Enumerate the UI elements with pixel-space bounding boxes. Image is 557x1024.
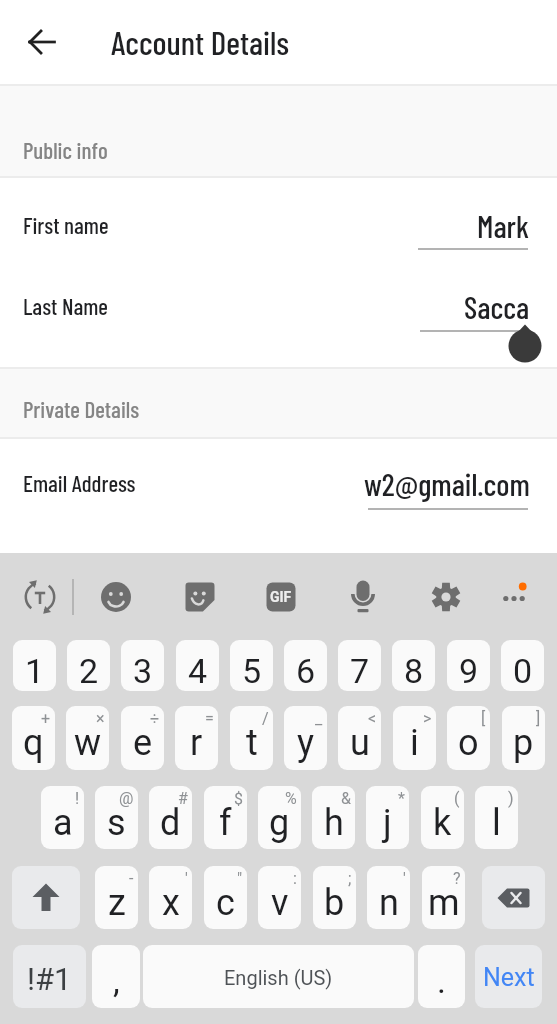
button[interactable]: l (475, 786, 518, 849)
button[interactable]: First name (0, 201, 557, 249)
staticText: > (423, 709, 432, 728)
staticText: Mark (477, 207, 530, 244)
staticText: Private Details (23, 395, 140, 423)
staticText: Last Name (23, 292, 108, 320)
button[interactable]: m (422, 866, 465, 929)
staticText: b (324, 882, 345, 924)
staticText: Next (483, 963, 535, 992)
staticText: 6 (296, 651, 316, 691)
button[interactable]: v (258, 866, 301, 929)
staticText: ' (185, 869, 188, 888)
staticText: 9 (459, 651, 479, 691)
staticText: u (350, 722, 370, 764)
button[interactable]: , (92, 945, 140, 1008)
button[interactable]: Email Address (0, 459, 557, 507)
staticText: ÷ (150, 709, 160, 728)
staticText: s (107, 802, 126, 844)
button[interactable]: 7 (338, 640, 381, 691)
staticText: r (190, 722, 203, 764)
staticText: < (368, 709, 377, 728)
button[interactable]: s (95, 786, 138, 849)
staticText: Sacca (464, 288, 530, 325)
staticText: , (113, 961, 120, 1001)
button[interactable]: Backspace (482, 866, 545, 929)
staticText: o (458, 722, 479, 764)
button[interactable]: c (204, 866, 247, 929)
staticText: First name (23, 211, 109, 239)
button[interactable]: 5 (230, 640, 273, 691)
button[interactable]: Next (475, 945, 542, 1008)
button[interactable]: n (367, 866, 410, 929)
staticText: GIF (270, 589, 292, 605)
button[interactable]: y (284, 706, 327, 770)
button[interactable]: t (230, 706, 273, 770)
staticText: × (96, 709, 105, 728)
button[interactable]: u (338, 706, 381, 770)
button[interactable]: f (204, 786, 247, 849)
button[interactable]: Emoji (92, 573, 140, 621)
staticText: . (437, 961, 446, 1001)
staticText: g (269, 802, 290, 844)
button[interactable]: 0 (501, 640, 544, 691)
staticText: 1 (25, 651, 45, 691)
button[interactable]: w (66, 706, 109, 770)
staticText: [ (481, 709, 486, 728)
button[interactable]: g (258, 786, 301, 849)
button[interactable]: k (421, 786, 464, 849)
button[interactable]: 6 (284, 640, 327, 691)
button[interactable]: GIF (257, 573, 305, 621)
staticText: d (160, 802, 181, 844)
button[interactable]: More options (490, 573, 538, 621)
staticText: Public info (23, 136, 108, 164)
button[interactable]: b (313, 866, 356, 929)
button[interactable]: !#1 (13, 945, 86, 1008)
staticText: ( (454, 789, 460, 808)
staticText: 8 (404, 651, 424, 691)
staticText: ! (75, 789, 80, 808)
button[interactable]: Shift (12, 866, 80, 929)
staticText: 7 (350, 651, 370, 691)
staticText: l (492, 802, 501, 844)
button[interactable]: Settings (422, 573, 470, 621)
button[interactable]: q (12, 706, 55, 770)
button[interactable]: a (41, 786, 84, 849)
button[interactable]: x (149, 866, 192, 929)
staticText: Account Details (111, 22, 290, 62)
staticText: ? (453, 869, 461, 888)
staticText: English (US) (224, 966, 333, 989)
button[interactable]: 2 (67, 640, 110, 691)
button[interactable]: 8 (392, 640, 435, 691)
button[interactable]: Stickers (176, 573, 224, 621)
staticText: e (133, 722, 153, 764)
staticText: : (293, 869, 297, 888)
staticText: t (246, 722, 258, 764)
button[interactable]: . (418, 945, 465, 1008)
staticText: ) (508, 789, 514, 808)
button[interactable]: Translate (16, 573, 64, 621)
staticText: ] (536, 709, 541, 728)
button[interactable]: i (393, 706, 436, 770)
staticText: f (219, 802, 232, 844)
staticText: Email Address (23, 469, 136, 497)
button[interactable]: p (502, 706, 545, 770)
button[interactable]: 1 (13, 640, 56, 691)
button[interactable]: h (312, 786, 355, 849)
staticText: - (129, 869, 134, 888)
button[interactable]: e (121, 706, 164, 770)
button[interactable]: r (175, 706, 218, 770)
staticText: 4 (188, 651, 208, 691)
button[interactable]: Last Name (0, 282, 557, 330)
button[interactable]: Back (14, 14, 70, 70)
button[interactable]: English (US) (143, 945, 414, 1008)
button[interactable]: 9 (447, 640, 490, 691)
staticText: w2@gmail.com (364, 465, 530, 502)
button[interactable]: o (447, 706, 490, 770)
staticText: x (162, 882, 180, 924)
staticText: v (271, 882, 289, 924)
button[interactable]: Voice input (339, 573, 387, 621)
button[interactable]: 4 (176, 640, 219, 691)
button[interactable]: d (149, 786, 192, 849)
button[interactable]: j (366, 786, 409, 849)
button[interactable]: z (95, 866, 138, 929)
button[interactable]: 3 (121, 640, 164, 691)
